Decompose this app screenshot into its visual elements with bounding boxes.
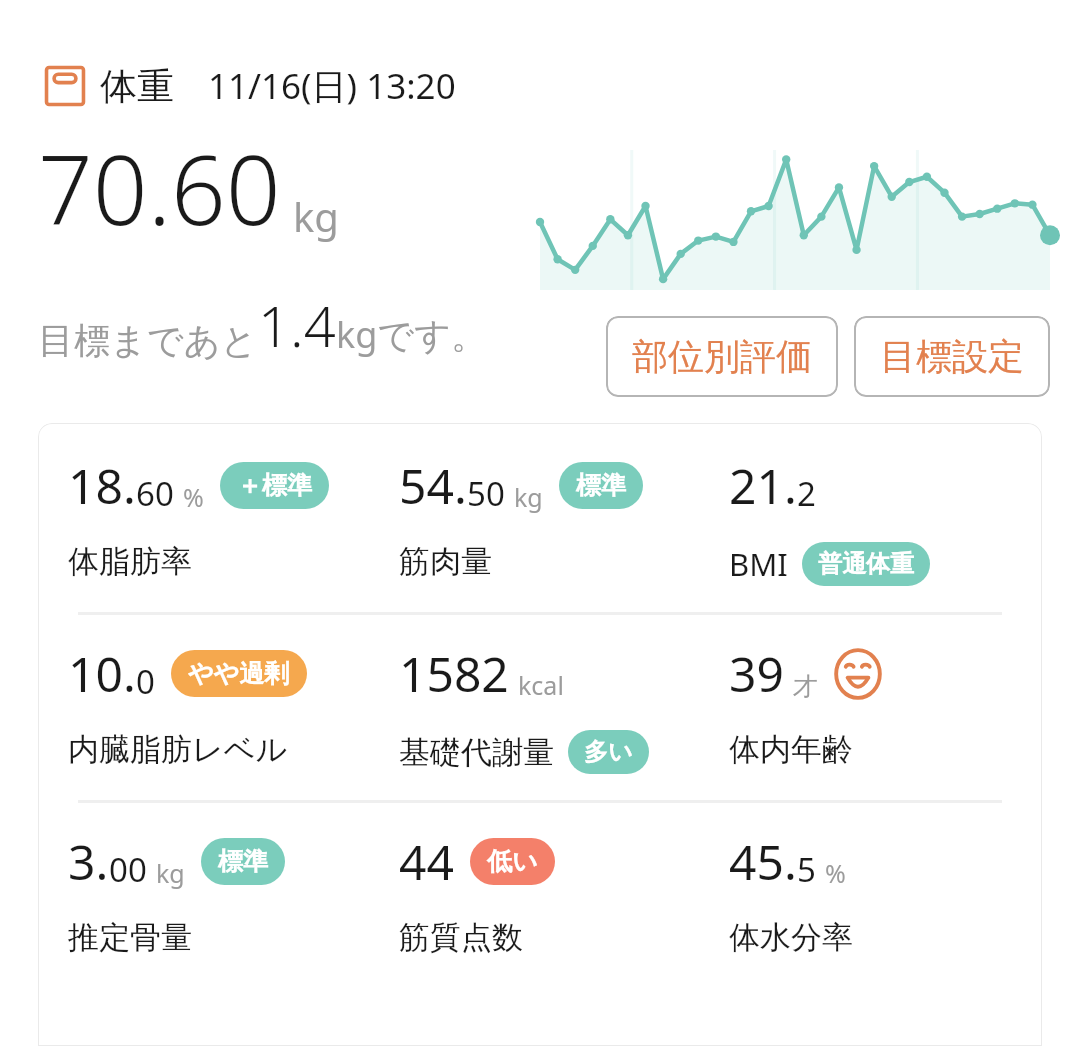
button[interactable]: 目標設定	[854, 316, 1050, 397]
staticText: 標準	[576, 470, 626, 501]
other: Body age rating	[832, 648, 884, 700]
staticText: kg	[156, 856, 185, 890]
staticText: 基礎代謝量	[399, 733, 554, 772]
staticText: 筋質点数	[399, 918, 523, 957]
staticText: 内臓脂肪レベル	[68, 730, 288, 769]
staticText: 10.	[68, 641, 136, 706]
staticText: 44	[399, 829, 454, 894]
staticText: 体重	[100, 63, 174, 110]
staticText: 11/16(日) 13:20	[208, 62, 456, 110]
staticText: 体内年齢	[729, 730, 853, 769]
staticText: 多い	[584, 737, 633, 767]
staticText: 70.60	[38, 122, 281, 253]
staticText: 3.	[68, 829, 109, 894]
button[interactable]: 18.	[68, 453, 399, 581]
staticText: 推定骨量	[68, 918, 192, 957]
button[interactable]: 44	[399, 829, 729, 957]
staticText: 0	[136, 659, 155, 704]
staticText: kg	[514, 480, 543, 514]
staticText: 1.4	[258, 287, 336, 363]
button[interactable]: 21.	[729, 453, 1012, 586]
staticText: 標準	[218, 846, 268, 877]
staticText: 体脂肪率	[68, 542, 192, 581]
staticText: 21.	[729, 453, 797, 518]
staticText: 目標設定	[880, 334, 1024, 379]
button[interactable]: 1582	[399, 641, 729, 774]
staticText: kgです。	[336, 310, 488, 359]
staticText: 普通体重	[818, 549, 914, 579]
staticText: %	[825, 856, 846, 890]
staticText: 部位別評価	[632, 334, 812, 379]
staticText: 体水分率	[729, 918, 853, 957]
button[interactable]: 45.	[729, 829, 1012, 957]
staticText: 39	[729, 641, 784, 706]
button[interactable]: 3.	[68, 829, 399, 957]
staticText: BMI	[729, 543, 788, 585]
button[interactable]: 39	[729, 641, 1012, 769]
other: Weight scale	[44, 65, 86, 107]
staticText: 筋肉量	[399, 542, 492, 581]
staticText: 2	[797, 471, 816, 516]
staticText: 00	[109, 847, 147, 892]
staticText: 才	[793, 671, 818, 702]
staticText: 50	[467, 471, 505, 516]
staticText: やや過剰	[188, 658, 290, 689]
button[interactable]: Weight scale	[44, 62, 1080, 110]
staticText: 45.	[729, 829, 797, 894]
staticText: 54.	[399, 453, 467, 518]
staticText: 低い	[487, 846, 538, 877]
staticText: 5	[797, 847, 816, 892]
staticText: kcal	[518, 668, 564, 702]
button[interactable]: 54.	[399, 453, 729, 581]
staticText: 1582	[399, 641, 509, 706]
staticText: ＋標準	[237, 470, 312, 501]
staticText: 18.	[68, 453, 136, 518]
button[interactable]: 10.	[68, 641, 399, 769]
staticText: %	[183, 480, 204, 514]
staticText: kg	[293, 189, 339, 243]
staticText: 目標まであと	[38, 318, 258, 363]
button[interactable]: 部位別評価	[606, 316, 838, 397]
staticText: 60	[136, 471, 174, 516]
